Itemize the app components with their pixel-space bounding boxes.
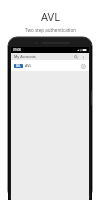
staticText: My Accounts xyxy=(14,54,36,59)
button[interactable]: More options xyxy=(80,54,86,60)
button[interactable]: AVL xyxy=(11,60,89,71)
staticText: AVL xyxy=(16,64,21,68)
staticText: AVL xyxy=(25,63,32,68)
staticText: Two step authentication xyxy=(25,27,76,33)
staticText: AVL xyxy=(41,9,60,24)
button[interactable]: Refresh code xyxy=(80,63,86,69)
button[interactable]: Search xyxy=(73,54,79,60)
staticText: 09:06 xyxy=(13,48,22,52)
